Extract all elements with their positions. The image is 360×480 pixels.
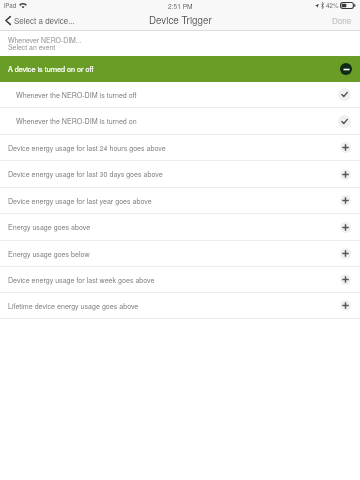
button[interactable]: Remove trigger xyxy=(340,63,352,75)
button[interactable]: Device energy usage for last week goes a… xyxy=(0,267,360,293)
staticText: Device energy usage for last 30 days goe… xyxy=(8,169,163,179)
button[interactable]: Lifetime device energy usage goes above xyxy=(0,293,360,319)
staticText: Select a device... xyxy=(14,15,75,26)
staticText: Whenever NERO-DIM... xyxy=(8,35,82,45)
button[interactable]: Add trigger xyxy=(340,142,351,153)
staticText: A device is turned on or off xyxy=(8,64,94,74)
staticText: 42% xyxy=(326,1,339,10)
staticText: Device energy usage for last week goes a… xyxy=(8,275,155,285)
button[interactable]: Add trigger xyxy=(340,169,351,180)
button[interactable]: Add trigger xyxy=(340,300,351,311)
staticText: Whenever the NERO-DIM is turned off xyxy=(16,90,137,100)
button[interactable]: Selected trigger xyxy=(338,115,351,128)
button[interactable]: Add trigger xyxy=(340,274,351,285)
staticText: Select an event xyxy=(8,42,56,52)
button[interactable]: Add trigger xyxy=(340,195,351,206)
button[interactable]: Energy usage goes below xyxy=(0,241,360,267)
button[interactable]: Selected trigger xyxy=(338,88,351,101)
staticText: Done xyxy=(332,15,352,26)
staticText: Whenever the NERO-DIM is turned on xyxy=(16,116,137,126)
button[interactable]: Whenever the NERO-DIM is turned on xyxy=(0,108,360,135)
staticText: 2:51 PM xyxy=(168,1,193,10)
staticText: iPad xyxy=(4,1,17,10)
button[interactable]: Whenever the NERO-DIM is turned off xyxy=(0,82,360,108)
button[interactable]: Add trigger xyxy=(340,248,351,259)
button[interactable]: Device energy usage for last year goes a… xyxy=(0,188,360,214)
staticText: Device energy usage for last 24 hours go… xyxy=(8,143,166,153)
button[interactable]: Done xyxy=(324,13,360,28)
button[interactable]: A device is turned on or off xyxy=(0,56,360,82)
button[interactable]: Select a device... xyxy=(0,13,81,28)
staticText: Device energy usage for last year goes a… xyxy=(8,196,152,206)
button[interactable]: Device energy usage for last 30 days goe… xyxy=(0,161,360,188)
staticText: Energy usage goes below xyxy=(8,249,90,259)
staticText: Lifetime device energy usage goes above xyxy=(8,301,139,311)
staticText: Device Trigger xyxy=(149,13,212,27)
button[interactable]: Energy usage goes above xyxy=(0,214,360,241)
button[interactable]: Device energy usage for last 24 hours go… xyxy=(0,135,360,161)
button[interactable]: Add trigger xyxy=(340,222,351,233)
staticText: Energy usage goes above xyxy=(8,222,91,232)
